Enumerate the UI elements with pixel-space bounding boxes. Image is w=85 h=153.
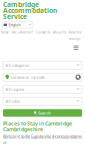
button[interactable]: All cities bbox=[3, 97, 82, 105]
button[interactable]: Home · Are a Hotelier? · Contact Us · Ab… bbox=[1, 31, 82, 34]
button[interactable]: All regions bbox=[3, 85, 82, 93]
staticText: Accommodation bbox=[3, 6, 57, 15]
staticText: Home · Are a Hotelier? · Contact Us · Ab… bbox=[1, 31, 82, 34]
button[interactable]: All categories bbox=[3, 61, 82, 69]
staticText: Service. Cambridgeshire is a UK wide sea… bbox=[3, 135, 82, 145]
staticText: Settings bbox=[69, 37, 80, 41]
staticText: All regions bbox=[5, 86, 24, 92]
staticText: Location or zip code bbox=[11, 74, 45, 80]
button[interactable]: English bbox=[2, 21, 33, 28]
button[interactable]: Menu bbox=[72, 45, 79, 51]
staticText: Welcome to the Cambridge Accommodation bbox=[3, 133, 81, 138]
staticText: Cambridgeshire bbox=[3, 125, 43, 133]
staticText: Search bbox=[38, 110, 51, 116]
staticText: All categories bbox=[5, 62, 29, 68]
staticText: Service bbox=[3, 12, 27, 21]
staticText: English bbox=[8, 22, 20, 27]
staticText: Places to Stay in Cambridge bbox=[3, 120, 72, 127]
staticText: Cambridge bbox=[3, 0, 39, 9]
button[interactable]: Settings bbox=[69, 37, 80, 41]
staticText: All cities bbox=[5, 98, 20, 104]
button[interactable]: Search bbox=[3, 109, 82, 117]
button[interactable]: Location or zip code bbox=[3, 73, 82, 81]
